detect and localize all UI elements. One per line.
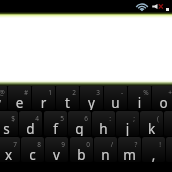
button[interactable]: 0 (70, 137, 93, 162)
staticText: % (142, 88, 150, 97)
staticText: @ (0, 88, 6, 97)
button[interactable]: ! (142, 137, 165, 162)
staticText: , (142, 146, 165, 162)
staticText: j (116, 120, 139, 136)
staticText: 3 (94, 88, 102, 97)
staticText: r (32, 94, 55, 110)
staticText: / (108, 140, 116, 149)
button[interactable]: 6 (68, 111, 91, 136)
staticText: 4 (33, 114, 41, 123)
button[interactable]: 7 (0, 137, 20, 162)
staticText: $ (9, 114, 17, 123)
staticText: k (140, 120, 163, 136)
staticText: v (45, 146, 68, 162)
button[interactable]: # (8, 85, 31, 110)
staticText: o (152, 94, 172, 110)
staticText: e (8, 94, 31, 110)
button[interactable]: ; (116, 111, 139, 136)
button[interactable]: $ (0, 111, 18, 136)
staticText: ( (154, 114, 162, 123)
staticText: 2 (70, 88, 78, 97)
staticText: ! (156, 140, 164, 149)
button[interactable]: / (94, 137, 117, 162)
button[interactable]: ( (140, 111, 163, 136)
button[interactable]: 8 (21, 137, 44, 162)
button[interactable]: : (92, 111, 115, 136)
staticText: x (0, 146, 20, 162)
button[interactable]: & (166, 137, 172, 162)
button[interactable]: ? (118, 137, 141, 162)
button[interactable]: 2 (56, 85, 79, 110)
button[interactable]: Sound muted (152, 4, 163, 9)
staticText: l (164, 120, 172, 136)
button[interactable]: 1 (32, 85, 55, 110)
staticText: 1 (46, 88, 54, 97)
button[interactable]: ) (164, 111, 172, 136)
staticText: ? (132, 140, 140, 149)
staticText: w (0, 94, 7, 110)
button[interactable]: 9 (45, 137, 68, 162)
button[interactable]: Wi-Fi (135, 2, 149, 11)
staticText: 6 (82, 114, 90, 123)
staticText: y (80, 94, 103, 110)
button[interactable]: 4 (19, 111, 42, 136)
button[interactable]: 5 (44, 111, 67, 136)
staticText: 8 (35, 140, 43, 149)
staticText: f (44, 120, 67, 136)
staticText: 5 (58, 114, 66, 123)
staticText: m (118, 146, 141, 162)
staticText: ; (130, 114, 138, 123)
staticText: - (118, 88, 126, 97)
button[interactable]: @ (0, 85, 7, 110)
staticText: b (70, 146, 93, 162)
staticText: d (19, 120, 42, 136)
button[interactable]: + (152, 85, 172, 110)
staticText: 0 (84, 140, 92, 149)
staticText: h (92, 120, 115, 136)
staticText: + (166, 88, 172, 97)
button[interactable]: 3 (80, 85, 103, 110)
staticText: s (0, 120, 18, 136)
button[interactable]: - (104, 85, 127, 110)
staticText: n (94, 146, 117, 162)
staticText: c (21, 146, 44, 162)
staticText: u (104, 94, 127, 110)
staticText: # (22, 88, 30, 97)
staticText: g (68, 120, 91, 136)
staticText: : (106, 114, 114, 123)
staticText: 7 (11, 140, 19, 149)
staticText: . (166, 146, 172, 162)
staticText: 9 (59, 140, 67, 149)
button[interactable]: % (128, 85, 151, 110)
staticText: t (56, 94, 79, 110)
staticText: i (128, 94, 151, 110)
